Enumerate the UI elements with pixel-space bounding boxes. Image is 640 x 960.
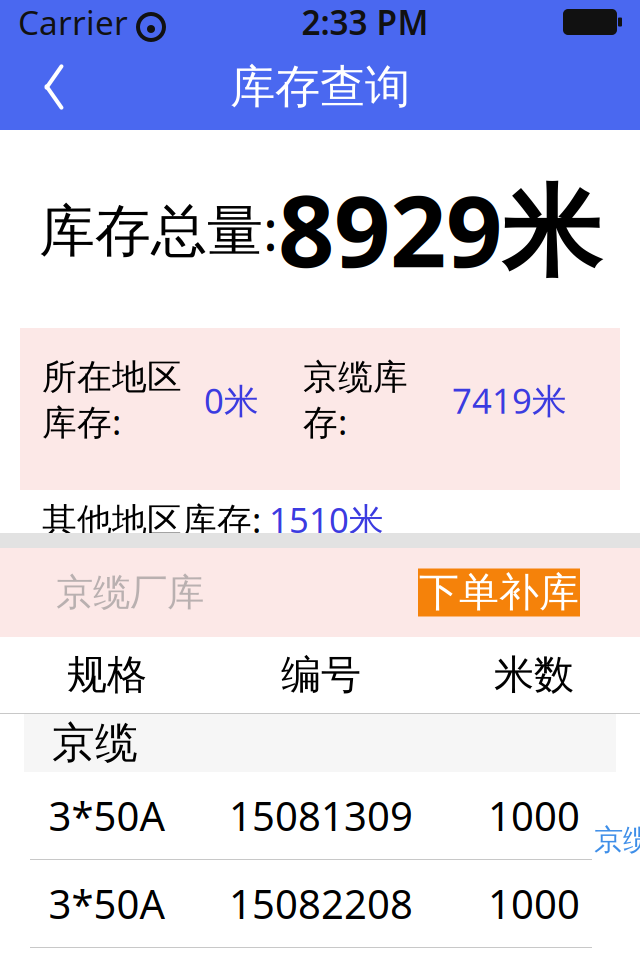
staticText: 0米	[204, 377, 259, 423]
staticText: 7419米	[452, 377, 567, 423]
staticText: 15081309	[229, 789, 413, 842]
staticText: 其他地区库存:	[42, 497, 261, 543]
staticText: 京缆库存:	[303, 356, 408, 445]
staticText: 下单补库	[419, 568, 579, 617]
staticText: 编号	[281, 650, 361, 699]
staticText: 1000	[488, 877, 580, 930]
staticText: 3*50A	[48, 789, 165, 842]
staticText: 8929米	[278, 163, 601, 294]
staticText: 2:33 PM	[301, 0, 428, 44]
staticText: 规格	[67, 650, 147, 699]
staticText: 库存查询	[230, 59, 410, 115]
staticText: 所在地区库存:	[42, 356, 182, 445]
staticText: 库存总量:	[39, 192, 278, 266]
staticText: 米数	[494, 650, 574, 699]
button[interactable]: 下单补库	[418, 568, 580, 616]
button[interactable]: 3*50A	[0, 772, 640, 860]
staticText: 1510米	[269, 497, 384, 543]
staticText: 15082208	[229, 877, 413, 930]
staticText: Carrier	[18, 0, 128, 44]
button[interactable]: 3*50A	[0, 860, 640, 948]
staticText: 京缆厂库	[56, 570, 204, 615]
staticText: 京缆	[594, 822, 640, 858]
staticText: 3*50A	[48, 877, 165, 930]
button[interactable]: Back	[26, 59, 82, 115]
staticText: 京缆	[52, 717, 138, 769]
staticText: 1000	[488, 789, 580, 842]
